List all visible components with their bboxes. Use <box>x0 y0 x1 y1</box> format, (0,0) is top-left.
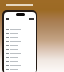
button[interactable] <box>4 67 36 71</box>
button[interactable] <box>4 35 36 39</box>
button[interactable] <box>4 47 36 51</box>
button[interactable] <box>4 71 36 72</box>
button[interactable] <box>4 51 36 55</box>
button[interactable] <box>4 63 36 67</box>
button[interactable] <box>4 27 36 31</box>
button[interactable] <box>4 59 36 63</box>
button[interactable] <box>4 39 36 43</box>
button[interactable] <box>4 31 36 35</box>
button[interactable] <box>4 55 36 59</box>
button[interactable] <box>4 43 36 47</box>
